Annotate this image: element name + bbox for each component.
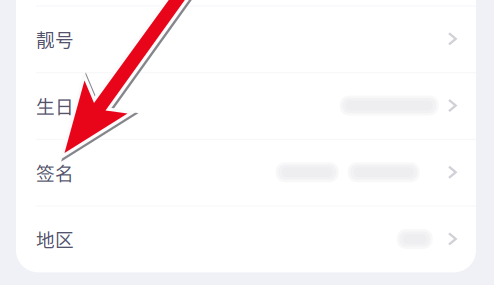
staticText: 靓号 [36, 25, 74, 52]
button[interactable]: 签名 [16, 139, 476, 206]
button[interactable]: 地区 [16, 206, 476, 272]
staticText: 地区 [36, 225, 74, 252]
staticText: 生日 [36, 92, 74, 119]
staticText: 签名 [36, 159, 74, 186]
button[interactable]: 靓号 [16, 5, 476, 72]
button[interactable]: 生日 [16, 72, 476, 139]
